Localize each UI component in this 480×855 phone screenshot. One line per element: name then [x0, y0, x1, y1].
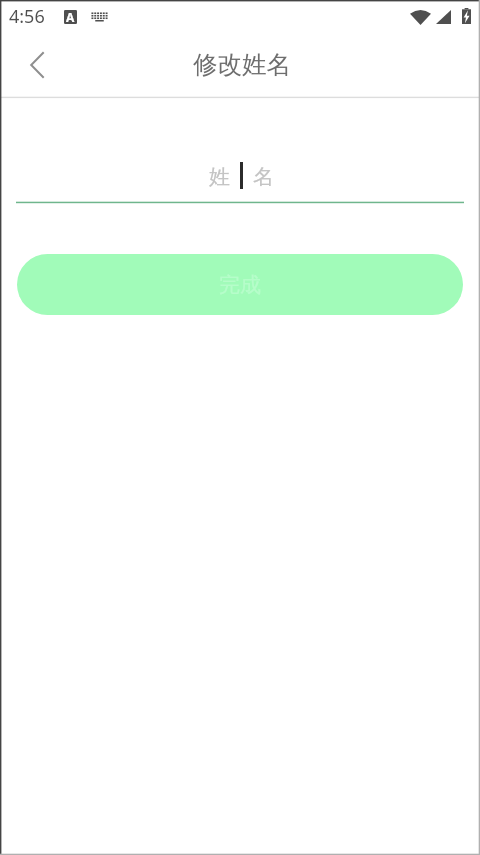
staticText: 姓: [209, 164, 230, 190]
staticText: 修改姓名: [193, 49, 291, 80]
staticText: 名: [253, 164, 274, 190]
staticText: A: [66, 10, 75, 23]
staticText: 4:56: [9, 4, 45, 29]
button[interactable]: 姓: [16, 154, 464, 197]
button[interactable]: Back: [0, 32, 72, 96]
button[interactable]: 完成: [17, 254, 463, 315]
staticText: 完成: [219, 272, 261, 298]
